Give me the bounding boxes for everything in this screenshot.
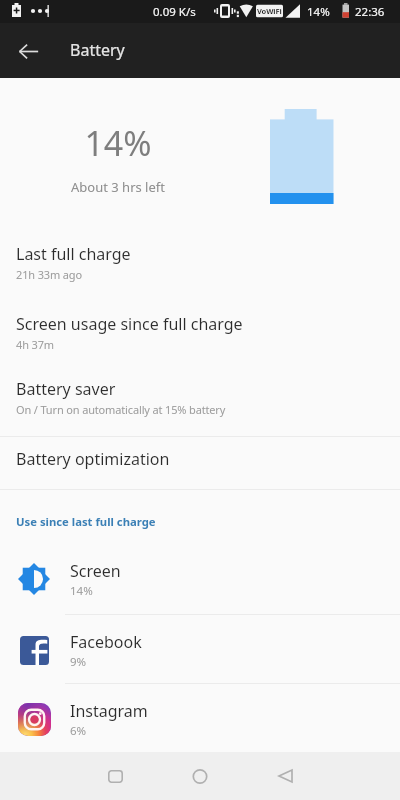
button[interactable]: Screen usage since full charge xyxy=(0,302,400,363)
button[interactable]: Facebook xyxy=(0,622,400,679)
button[interactable]: Home xyxy=(176,752,224,800)
staticText: Battery optimization xyxy=(16,448,170,470)
staticText: Use since last full charge xyxy=(16,514,156,529)
button[interactable]: Instagram xyxy=(0,691,400,748)
button[interactable]: Last full charge xyxy=(0,232,400,293)
staticText: Battery xyxy=(70,39,125,61)
staticText: 14% xyxy=(70,583,93,599)
button[interactable]: Navigate up xyxy=(4,27,52,75)
staticText: Screen usage since full charge xyxy=(16,313,243,335)
staticText: 4h 37m xyxy=(16,337,54,352)
staticText: VoWiFi xyxy=(257,6,282,16)
button[interactable]: Back xyxy=(261,752,309,800)
staticText: Last full charge xyxy=(16,243,131,265)
staticText: Battery saver xyxy=(16,378,116,400)
button[interactable]: Screen xyxy=(0,551,400,608)
staticText: Screen xyxy=(70,560,121,582)
staticText: About 3 hrs left xyxy=(58,178,178,196)
staticText: 9% xyxy=(70,654,87,670)
staticText: Instagram xyxy=(70,700,148,722)
button[interactable]: Battery saver xyxy=(0,367,400,428)
staticText: 0.09 K/s xyxy=(153,4,196,20)
button[interactable]: Battery optimization xyxy=(0,437,400,481)
staticText: 6% xyxy=(70,723,87,739)
button[interactable]: Recent apps xyxy=(91,752,139,800)
staticText: Facebook xyxy=(70,631,142,653)
staticText: On / Turn on automatically at 15% batter… xyxy=(16,402,226,417)
staticText: 14% xyxy=(307,4,330,20)
staticText: 21h 33m ago xyxy=(16,267,82,282)
staticText: 14% xyxy=(58,120,178,166)
staticText: 22:36 xyxy=(355,4,385,20)
